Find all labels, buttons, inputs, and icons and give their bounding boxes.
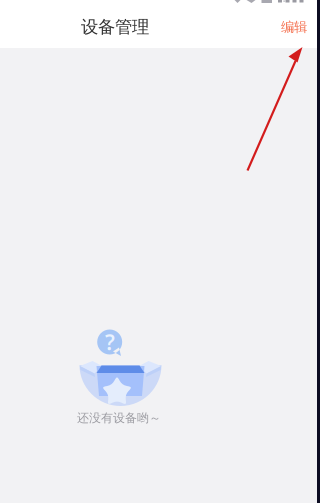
- staticText: 还没有设备哟～: [77, 411, 161, 425]
- staticText: ?: [105, 328, 115, 356]
- button[interactable]: 编辑: [271, 10, 317, 44]
- staticText: 编辑: [281, 19, 307, 35]
- staticText: 设备管理: [81, 16, 149, 38]
